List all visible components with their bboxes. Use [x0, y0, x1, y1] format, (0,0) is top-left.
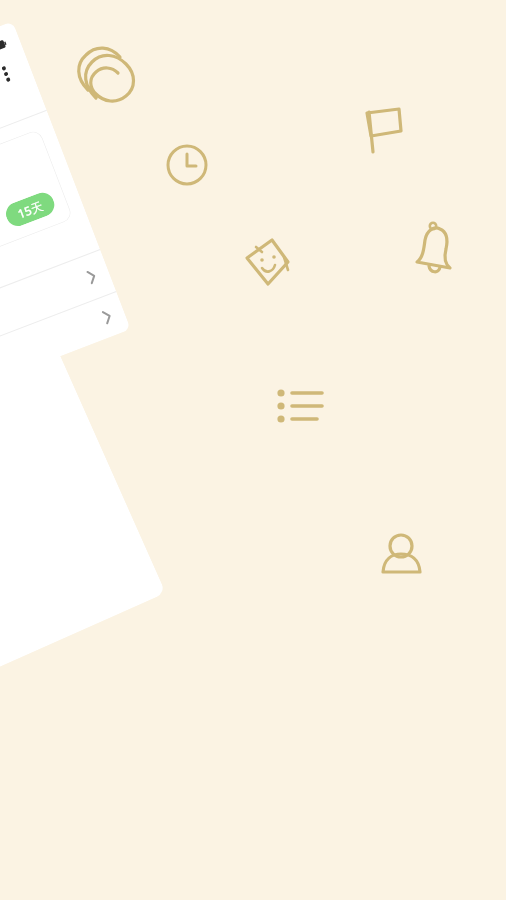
button[interactable]	[0, 255, 103, 375]
button[interactable]: 97%	[0, 21, 131, 419]
button[interactable]	[0, 297, 118, 414]
button[interactable]: More options	[0, 57, 23, 91]
button[interactable]: Join a group	[0, 291, 166, 699]
staticText: 15天	[15, 197, 45, 221]
button[interactable]: 15天	[15, 197, 45, 221]
button[interactable]: 15天	[0, 129, 73, 298]
